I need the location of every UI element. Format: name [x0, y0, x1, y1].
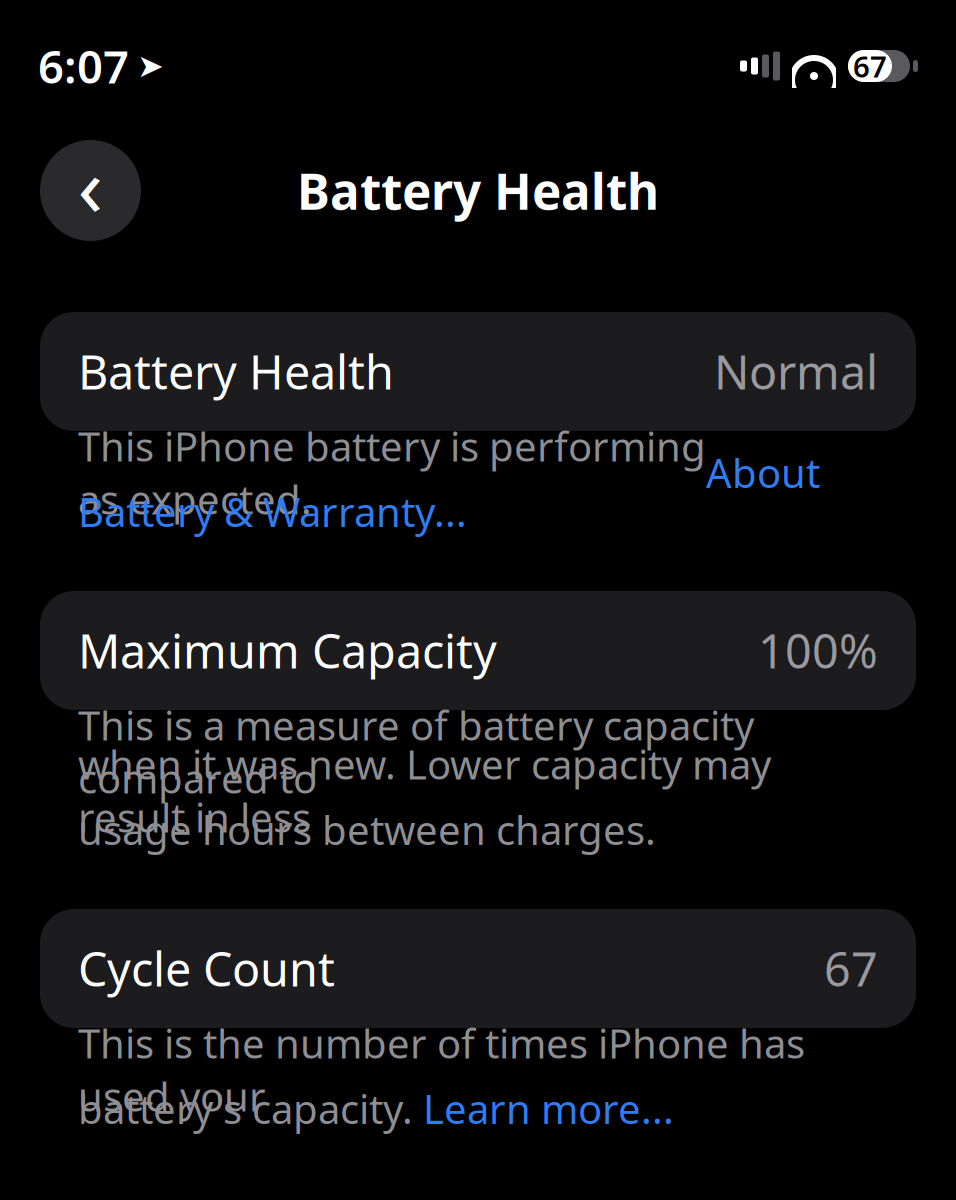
- staticText: 67: [853, 46, 887, 85]
- button[interactable]: Battery Health: [40, 312, 916, 431]
- staticText: 100%: [758, 619, 878, 681]
- staticText: Battery Health: [297, 158, 659, 223]
- button[interactable]: Cycle Count: [40, 909, 916, 1028]
- staticText: ‹: [77, 130, 103, 239]
- staticText: 67: [824, 937, 878, 999]
- staticText: Learn more...: [423, 1082, 674, 1135]
- staticText: This iPhone battery is performing as exp…: [78, 419, 706, 526]
- staticText: battery's capacity.: [78, 1082, 423, 1135]
- staticText: This is the number of times iPhone has u…: [78, 1016, 805, 1123]
- staticText: Cycle Count: [78, 937, 335, 999]
- staticText: About: [706, 446, 820, 499]
- staticText: Battery & Warranty...: [78, 485, 467, 538]
- staticText: 6:07: [38, 36, 129, 96]
- button[interactable]: Maximum Capacity: [40, 591, 916, 710]
- staticText: ➤: [137, 48, 164, 84]
- button[interactable]: Back: [40, 140, 141, 241]
- staticText: Battery Health: [78, 340, 394, 402]
- staticText: Maximum Capacity: [78, 619, 497, 681]
- staticText: This is a measure of battery capacity co…: [78, 698, 754, 805]
- staticText: usage hours between charges.: [78, 803, 656, 856]
- staticText: when it was new. Lower capacity may resu…: [78, 737, 771, 844]
- staticText: Normal: [714, 340, 878, 402]
